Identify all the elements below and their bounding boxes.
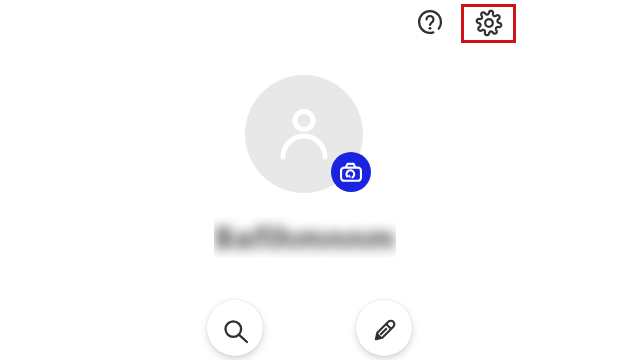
button[interactable]: Edit <box>356 300 412 356</box>
button[interactable]: Help <box>414 6 446 38</box>
button[interactable]: Search <box>207 300 263 356</box>
button[interactable]: Profile photo <box>245 75 363 193</box>
button[interactable]: Settings <box>461 4 516 43</box>
staticText: Bafihmnnm <box>214 217 396 258</box>
button[interactable]: Change profile photo <box>331 152 371 192</box>
